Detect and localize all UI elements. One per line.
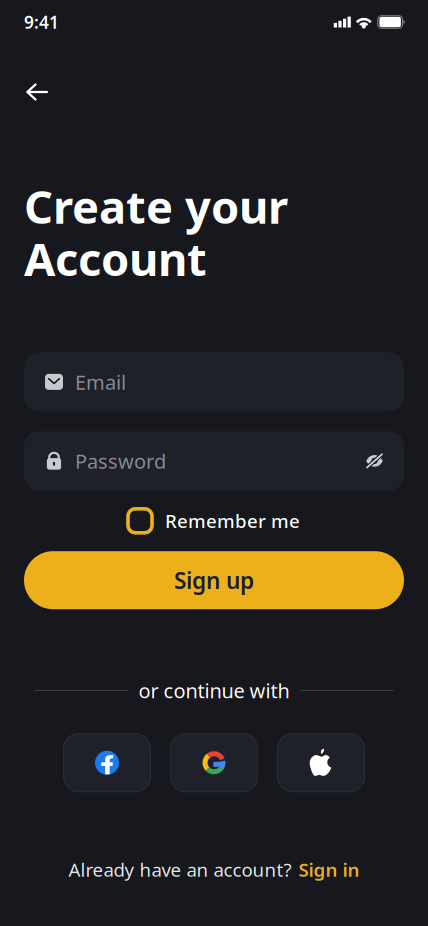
- button[interactable]: Sign up: [24, 551, 404, 609]
- button[interactable]: Continue with Facebook: [63, 734, 150, 792]
- staticText: Email: [75, 369, 126, 395]
- staticText: Sign in: [298, 857, 359, 882]
- button[interactable]: Back: [15, 70, 59, 114]
- staticText: Already have an account?: [68, 857, 291, 882]
- staticText: Remember me: [165, 508, 300, 533]
- staticText: or continue with: [138, 677, 289, 704]
- button[interactable]: Remember me: [128, 508, 300, 533]
- staticText: Sign up: [174, 565, 254, 595]
- button[interactable]: Continue with Google: [170, 734, 257, 792]
- staticText: Password: [75, 448, 166, 474]
- staticText: Create your: [24, 176, 288, 236]
- button[interactable]: Email: [24, 352, 404, 411]
- button[interactable]: Sign in: [298, 857, 359, 882]
- staticText: 9:41: [24, 10, 59, 33]
- staticText: Account: [24, 228, 207, 288]
- button[interactable]: Password: [24, 431, 404, 490]
- button[interactable]: Continue with Apple: [277, 734, 364, 792]
